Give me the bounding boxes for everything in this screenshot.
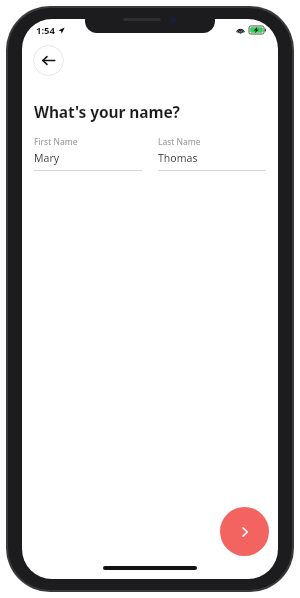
button[interactable]: Next — [220, 507, 269, 556]
staticText: What's your name? — [34, 101, 180, 122]
staticText: Thomas — [158, 151, 198, 165]
button[interactable]: Last Name — [158, 136, 266, 171]
staticText: Last Name — [158, 136, 201, 148]
staticText: 1:54 — [36, 24, 55, 37]
button[interactable]: Back — [33, 45, 64, 76]
staticText: Mary — [34, 151, 60, 165]
button[interactable]: First Name — [34, 136, 142, 171]
staticText: First Name — [34, 136, 78, 148]
